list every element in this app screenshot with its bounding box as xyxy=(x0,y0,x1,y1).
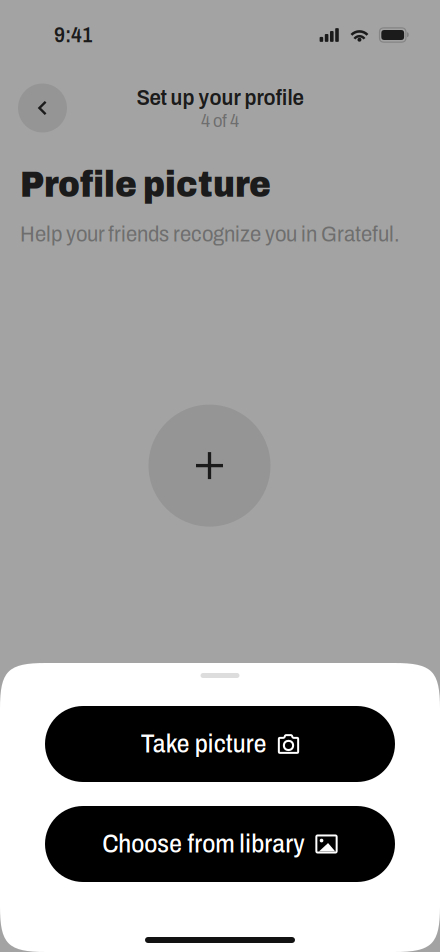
staticText: Choose from library xyxy=(102,830,304,858)
staticText: 9:41 xyxy=(54,23,93,47)
staticText: 4 of 4 xyxy=(201,111,239,131)
staticText: Set up your profile xyxy=(136,85,303,110)
staticText: Profile picture xyxy=(20,164,271,205)
staticText: Take picture xyxy=(141,730,267,758)
button[interactable]: Take picture xyxy=(45,706,395,782)
button[interactable]: Back xyxy=(18,83,67,132)
staticText: Help your friends recognize you in Grate… xyxy=(20,222,400,246)
button[interactable]: Choose from library xyxy=(45,806,395,882)
